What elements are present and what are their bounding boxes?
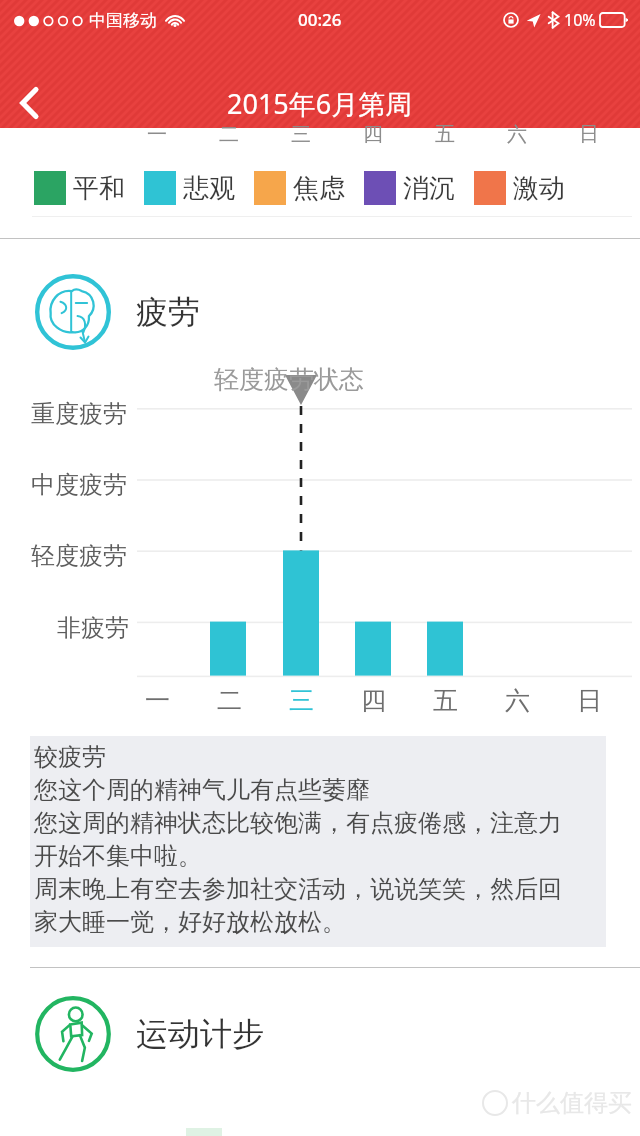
- staticText: 轻度疲劳: [31, 541, 127, 571]
- button[interactable]: 五: [421, 122, 469, 147]
- button[interactable]: 六: [493, 122, 541, 147]
- button[interactable]: 三: [277, 122, 325, 147]
- button[interactable]: 日: [565, 685, 613, 716]
- staticText: 日: [579, 122, 599, 147]
- staticText: 非疲劳: [57, 613, 129, 643]
- button[interactable]: 运动计步: [35, 996, 640, 1072]
- button[interactable]: 四: [349, 685, 397, 716]
- button[interactable]: 平和: [34, 171, 125, 205]
- button[interactable]: 悲观: [144, 171, 235, 205]
- button[interactable]: 激动: [474, 171, 565, 205]
- button[interactable]: 日: [565, 122, 613, 147]
- staticText: 中度疲劳: [31, 470, 127, 500]
- staticText: 四: [363, 122, 383, 147]
- staticText: 一: [145, 685, 170, 716]
- button[interactable]: 一: [133, 685, 181, 716]
- button[interactable]: 一: [133, 122, 181, 147]
- button[interactable]: 疲劳: [35, 274, 640, 350]
- button[interactable]: 三: [277, 685, 325, 716]
- staticText: 激动: [513, 172, 565, 205]
- staticText: 悲观: [183, 172, 235, 205]
- staticText: 00:26: [298, 8, 342, 31]
- staticText: 较疲劳: [34, 742, 106, 772]
- staticText: 五: [435, 122, 455, 147]
- staticText: 六: [507, 122, 527, 147]
- staticText: 您这周的精神状态比较饱满，有点疲倦感，注意力: [34, 808, 562, 838]
- staticText: 周末晚上有空去参加社交活动，说说笑笑，然后回: [34, 874, 562, 904]
- staticText: 四: [361, 685, 386, 716]
- button[interactable]: Back: [0, 80, 58, 126]
- button[interactable]: 五: [421, 685, 469, 716]
- staticText: 三: [289, 685, 314, 716]
- staticText: 一: [147, 122, 167, 147]
- button[interactable]: 焦虑: [254, 171, 345, 205]
- staticText: 您这个周的精神气儿有点些萎靡: [34, 775, 370, 805]
- button[interactable]: 消沉: [364, 171, 455, 205]
- staticText: 2015年6月第周: [227, 85, 413, 122]
- staticText: 家大睡一觉，好好放松放松。: [34, 907, 346, 937]
- staticText: 六: [505, 685, 530, 716]
- button[interactable]: 二: [205, 685, 253, 716]
- button[interactable]: 二: [205, 122, 253, 147]
- staticText: 运动计步: [136, 1014, 264, 1054]
- staticText: 消沉: [403, 172, 455, 205]
- staticText: 什么值得买: [512, 1088, 632, 1118]
- staticText: 焦虑: [293, 172, 345, 205]
- staticText: 重度疲劳: [31, 399, 127, 429]
- staticText: 平和: [73, 172, 125, 205]
- staticText: 10%: [564, 9, 596, 31]
- button[interactable]: 四: [349, 122, 397, 147]
- staticText: 中国移动: [89, 10, 157, 31]
- staticText: 二: [217, 685, 242, 716]
- staticText: 轻度疲劳状态: [214, 364, 364, 395]
- staticText: 五: [433, 685, 458, 716]
- staticText: 二: [219, 122, 239, 147]
- staticText: 开始不集中啦。: [34, 841, 202, 871]
- button[interactable]: 六: [493, 685, 541, 716]
- staticText: 疲劳: [136, 292, 200, 332]
- staticText: 三: [291, 122, 311, 147]
- staticText: 日: [577, 685, 602, 716]
